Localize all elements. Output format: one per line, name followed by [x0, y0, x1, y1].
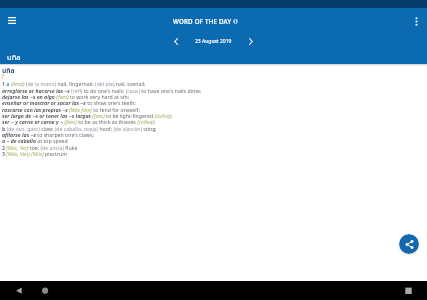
staticText: 23 August 2019 — [195, 38, 232, 45]
staticText: rascarse con las propias ~s (Méx fam) to… — [2, 106, 140, 113]
staticText: a ~ de caballo at top speed — [2, 137, 68, 144]
staticText: uña — [7, 52, 21, 62]
staticText: 3 (Méx, Ven) (Mús) plectrum — [2, 150, 68, 157]
staticText: WORD OF THE DAY — [173, 17, 232, 25]
button[interactable]: uña — [0, 49, 28, 64]
staticText: uña — [2, 66, 15, 75]
staticText: 2 (Mec, Tec) toe; (de ancla) fluke — [2, 144, 78, 151]
staticText: enseñar or mostrar or sacar las ~s to sh… — [2, 99, 136, 106]
button[interactable]: Previous day — [169, 34, 183, 48]
button[interactable]: Next day — [244, 34, 258, 48]
staticText: b (de oso, gato) claw; (de caballo, ovej… — [2, 125, 157, 132]
staticText: afilarse las ~s to sharpen one's claws; — [2, 131, 94, 138]
staticText: f — [2, 72, 4, 80]
button[interactable]: Share — [399, 234, 419, 254]
staticText: ser largo de ~s or tener las ~s largas (… — [2, 112, 173, 119]
staticText: dejarse las ~s en algo (fam) to work ver… — [2, 93, 130, 100]
staticText: ser ~ y carne or carne y ~ (fam) to be a… — [2, 118, 156, 125]
staticText: 1 a (Anat) (de la mano) nail, fingernail… — [2, 80, 146, 87]
button[interactable]: Menu — [4, 12, 20, 28]
staticText: arreglarse or hacerse las ~s (refl) to d… — [2, 87, 202, 94]
button[interactable]: More options — [408, 13, 424, 29]
